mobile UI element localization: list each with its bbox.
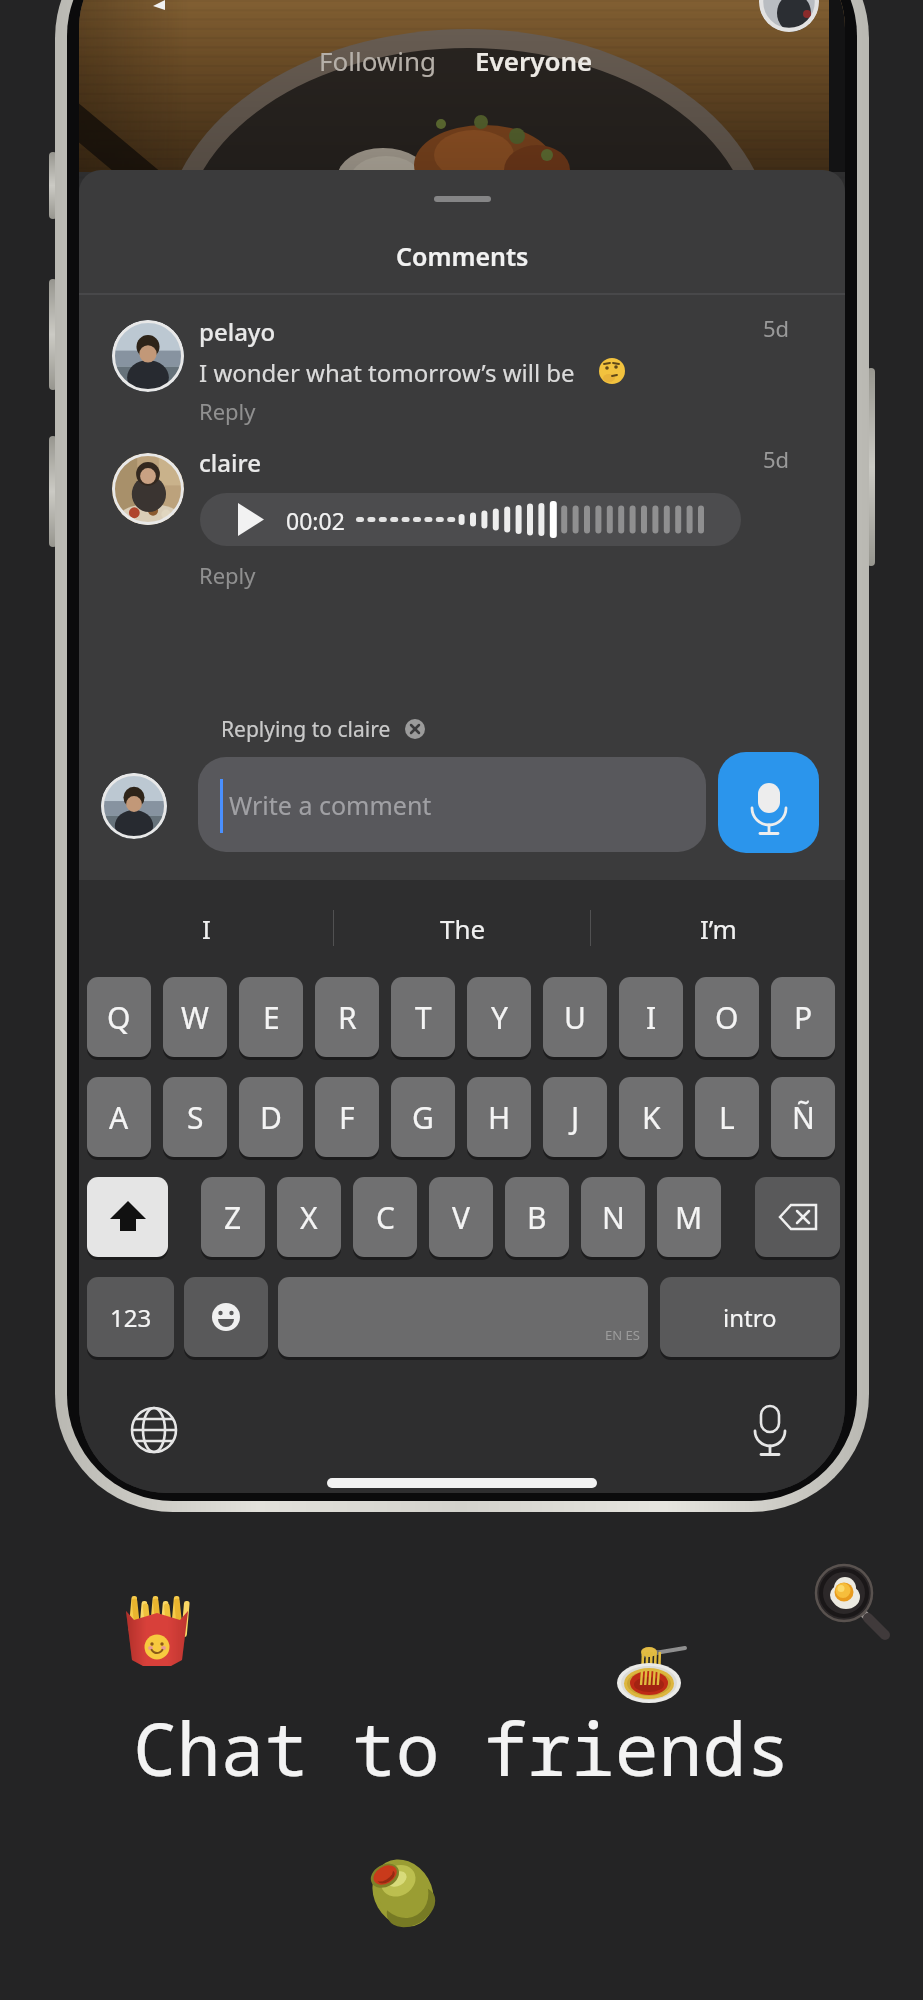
button[interactable]: G bbox=[391, 1077, 455, 1157]
button[interactable]: I bbox=[619, 977, 683, 1057]
button[interactable]: V bbox=[429, 1177, 493, 1257]
staticText: A bbox=[109, 1097, 129, 1138]
button[interactable]: I’m bbox=[658, 908, 778, 948]
button[interactable] bbox=[755, 1177, 840, 1257]
staticText: F bbox=[339, 1097, 355, 1138]
staticText: M bbox=[675, 1197, 703, 1238]
staticText: K bbox=[642, 1097, 661, 1138]
button[interactable]: K bbox=[619, 1077, 683, 1157]
staticText: P bbox=[794, 997, 813, 1038]
button[interactable] bbox=[200, 493, 741, 546]
staticText: O bbox=[715, 997, 739, 1038]
button[interactable]: T bbox=[391, 977, 455, 1057]
staticText: S bbox=[187, 1097, 204, 1138]
button[interactable] bbox=[184, 1277, 268, 1357]
button[interactable]: R bbox=[315, 977, 379, 1057]
button[interactable]: A bbox=[87, 1077, 151, 1157]
button[interactable] bbox=[130, 1406, 178, 1454]
button[interactable] bbox=[87, 1177, 168, 1257]
button[interactable]: The bbox=[403, 908, 523, 948]
button[interactable]: Following bbox=[308, 40, 448, 80]
staticText: intro bbox=[723, 1301, 777, 1334]
staticText: Q bbox=[107, 997, 131, 1038]
button[interactable]: I bbox=[146, 908, 266, 948]
staticText: 5d bbox=[763, 444, 790, 474]
staticText: D bbox=[260, 1097, 282, 1138]
button[interactable] bbox=[718, 752, 819, 853]
button[interactable]: Reply bbox=[199, 391, 319, 431]
staticText: W bbox=[181, 997, 209, 1038]
staticText: The bbox=[440, 911, 486, 946]
button[interactable]: C bbox=[353, 1177, 417, 1257]
button[interactable] bbox=[278, 1277, 648, 1357]
staticText: claire bbox=[199, 446, 261, 479]
staticText: N bbox=[602, 1197, 625, 1238]
staticText: 5d bbox=[763, 313, 790, 343]
staticText: U bbox=[564, 997, 586, 1038]
staticText: J bbox=[571, 1097, 580, 1138]
staticText: Y bbox=[491, 997, 508, 1038]
button[interactable]: E bbox=[239, 977, 303, 1057]
staticText: T bbox=[415, 997, 432, 1038]
staticText: Comments bbox=[396, 239, 529, 273]
staticText: B bbox=[527, 1197, 547, 1238]
staticText: Write a comment bbox=[229, 788, 432, 822]
staticText: Following bbox=[319, 43, 437, 78]
button[interactable]: P bbox=[771, 977, 835, 1057]
button[interactable]: Z bbox=[201, 1177, 265, 1257]
button[interactable]: O bbox=[695, 977, 759, 1057]
button[interactable]: 123 bbox=[87, 1277, 174, 1357]
staticText: Replying to claire bbox=[221, 715, 391, 744]
staticText: X bbox=[300, 1197, 318, 1238]
button[interactable]: X bbox=[277, 1177, 341, 1257]
staticText: R bbox=[338, 997, 357, 1038]
button[interactable]: M bbox=[657, 1177, 721, 1257]
staticText: Z bbox=[224, 1197, 242, 1238]
button[interactable]: H bbox=[467, 1077, 531, 1157]
button[interactable] bbox=[405, 719, 425, 739]
staticText: 00:02 bbox=[286, 505, 345, 536]
staticText: I wonder what tomorrow’s will be bbox=[199, 356, 575, 389]
button[interactable]: Reply bbox=[199, 555, 319, 595]
staticText: Chat to friends bbox=[133, 1698, 790, 1794]
button[interactable]: N bbox=[581, 1177, 645, 1257]
staticText: 123 bbox=[110, 1301, 152, 1334]
button[interactable]: D bbox=[239, 1077, 303, 1157]
staticText: V bbox=[452, 1197, 470, 1238]
button[interactable]: L bbox=[695, 1077, 759, 1157]
staticText: C bbox=[376, 1197, 395, 1238]
button[interactable]: B bbox=[505, 1177, 569, 1257]
staticText: I bbox=[202, 911, 211, 946]
staticText: Reply bbox=[199, 396, 256, 426]
staticText: Reply bbox=[199, 560, 256, 590]
staticText: EN ES bbox=[605, 1326, 640, 1344]
button[interactable]: S bbox=[163, 1077, 227, 1157]
button[interactable]: Q bbox=[87, 977, 151, 1057]
button[interactable]: Everyone bbox=[464, 40, 604, 80]
staticText: E bbox=[263, 997, 280, 1038]
button[interactable]: U bbox=[543, 977, 607, 1057]
button[interactable]: Y bbox=[467, 977, 531, 1057]
staticText: L bbox=[719, 1097, 735, 1138]
staticText: I’m bbox=[700, 911, 737, 946]
staticText: H bbox=[488, 1097, 511, 1138]
staticText: G bbox=[412, 1097, 434, 1138]
button[interactable] bbox=[198, 757, 706, 852]
button[interactable]: Ñ bbox=[771, 1077, 835, 1157]
staticText: Ñ bbox=[792, 1097, 815, 1138]
button[interactable]: W bbox=[163, 977, 227, 1057]
button[interactable] bbox=[748, 1404, 792, 1452]
button[interactable]: intro bbox=[660, 1277, 840, 1357]
staticText: I bbox=[646, 997, 657, 1038]
staticText: pelayo bbox=[199, 315, 276, 348]
button[interactable]: F bbox=[315, 1077, 379, 1157]
staticText: Everyone bbox=[475, 43, 593, 78]
button[interactable]: J bbox=[543, 1077, 607, 1157]
